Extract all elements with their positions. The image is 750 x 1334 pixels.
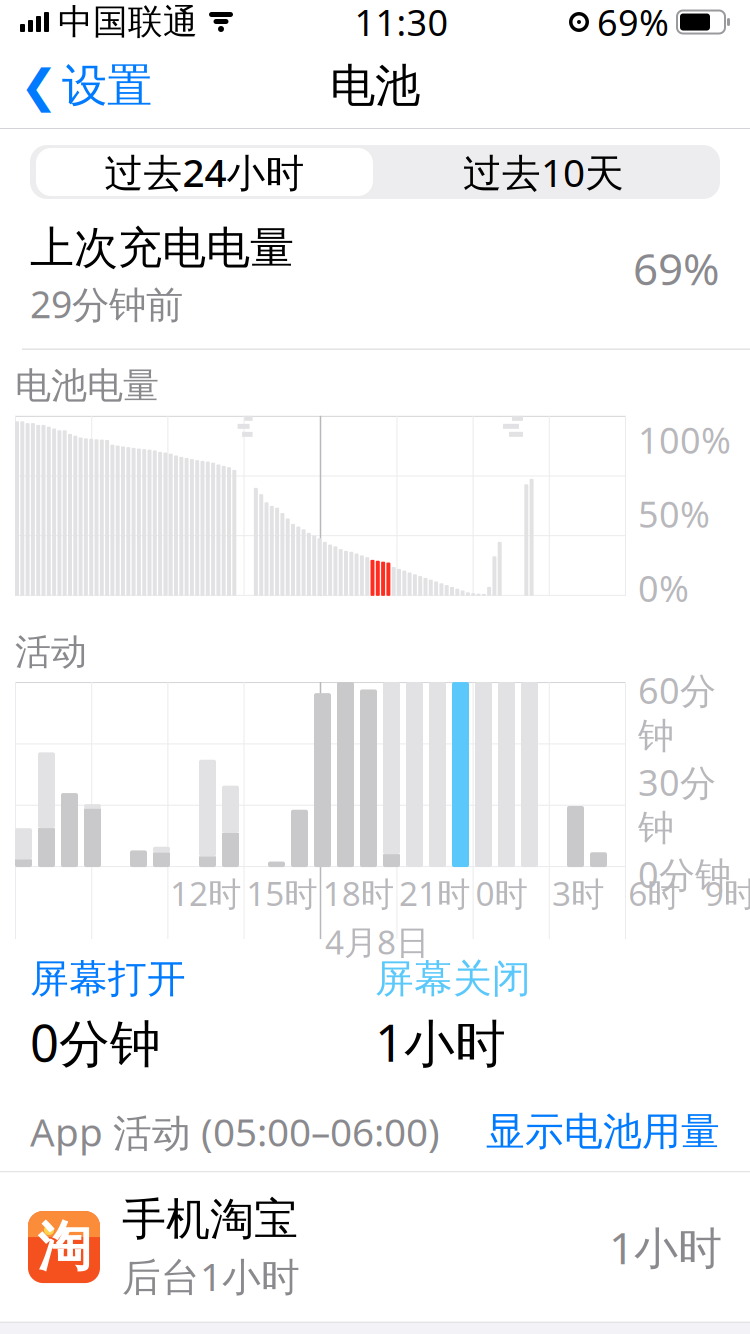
staticText: ❮	[20, 60, 58, 112]
staticText: 1小时	[375, 1009, 506, 1076]
staticText: 屏幕关闭	[375, 955, 531, 1003]
staticText: 11:30	[354, 0, 448, 46]
staticText: 3时	[552, 871, 604, 915]
staticText: 100%	[638, 416, 731, 464]
staticText: 活动	[15, 630, 87, 674]
staticText: 淘	[37, 1214, 90, 1280]
button[interactable]: 过去24小时	[36, 148, 373, 196]
staticText: 29分钟前	[30, 279, 183, 329]
staticText: 0分钟	[638, 850, 731, 898]
staticText: 0%	[638, 564, 689, 612]
staticText: 1小时	[609, 1218, 722, 1276]
staticText: 手机淘宝	[122, 1192, 298, 1246]
staticText: 设置	[62, 58, 152, 114]
staticText: 过去10天	[463, 146, 624, 198]
staticText: 69%	[633, 239, 720, 297]
staticText: 上次充电电量	[30, 221, 294, 275]
staticText: 21时	[399, 871, 470, 915]
staticText: 0分钟	[30, 1009, 161, 1076]
staticText: 30分钟	[638, 758, 716, 850]
staticText: 60分钟	[638, 666, 716, 758]
staticText: 12时	[170, 871, 241, 915]
button[interactable]: 显示电池用量	[486, 1108, 720, 1155]
staticText: 0时	[475, 871, 527, 915]
staticText: 电池电量	[15, 364, 159, 408]
staticText: 4月8日	[325, 919, 429, 964]
staticText: App 活动 (05:00–06:00)	[30, 1106, 440, 1157]
staticText: 18时	[323, 871, 394, 915]
staticText: 显示电池用量	[486, 1108, 720, 1155]
staticText: 15时	[246, 871, 317, 915]
staticText: 中国联通	[58, 1, 198, 43]
staticText: 屏幕打开	[30, 955, 186, 1003]
staticText: 电池	[330, 58, 420, 114]
staticText: 50%	[638, 490, 710, 538]
button[interactable]: 淘	[0, 1172, 750, 1322]
button[interactable]: ❮	[14, 50, 158, 122]
staticText: 69%	[597, 0, 669, 46]
staticText: 过去24小时	[104, 146, 304, 198]
staticText: 6时	[628, 871, 680, 915]
staticText: 后台1小时	[122, 1250, 300, 1302]
staticText: 9时	[705, 871, 750, 915]
button[interactable]: 过去10天	[373, 148, 714, 196]
